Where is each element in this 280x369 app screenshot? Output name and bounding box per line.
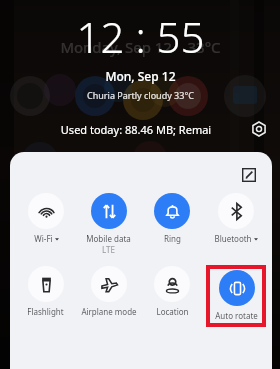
staticText: Churia Partly cloudy 33°C xyxy=(87,89,194,101)
staticText: LTE xyxy=(102,244,115,255)
staticText: Mon, Sep 12 xyxy=(105,68,176,84)
staticText: Bluetooth xyxy=(214,233,252,244)
button[interactable]: Location xyxy=(154,265,190,317)
button[interactable]: Edit quick settings xyxy=(238,164,260,186)
button[interactable]: Flashlight xyxy=(27,265,64,317)
staticText: Airplane mode xyxy=(81,306,137,317)
button[interactable]: Airplane mode xyxy=(81,265,137,317)
staticText: Ring xyxy=(164,233,181,244)
staticText: Flashlight xyxy=(27,306,64,317)
staticText: Wi-Fi xyxy=(34,233,53,244)
button[interactable]: Data usage settings xyxy=(248,118,270,140)
button[interactable]: Bluetooth xyxy=(214,192,258,244)
button[interactable]: Mobile data xyxy=(86,192,131,255)
staticText: Monday, Sep 12 33°C xyxy=(60,37,221,57)
staticText: Location xyxy=(156,306,189,317)
staticText: Auto rotate xyxy=(215,310,258,321)
staticText: Used today: 88.46 MB; Remai xyxy=(24,122,248,137)
button[interactable]: Ring xyxy=(154,192,190,244)
staticText: 12 : 55 xyxy=(76,8,205,65)
button[interactable]: Auto rotate xyxy=(215,269,258,321)
button[interactable]: Wi-Fi xyxy=(28,192,64,244)
staticText: Mobile data xyxy=(86,233,131,244)
